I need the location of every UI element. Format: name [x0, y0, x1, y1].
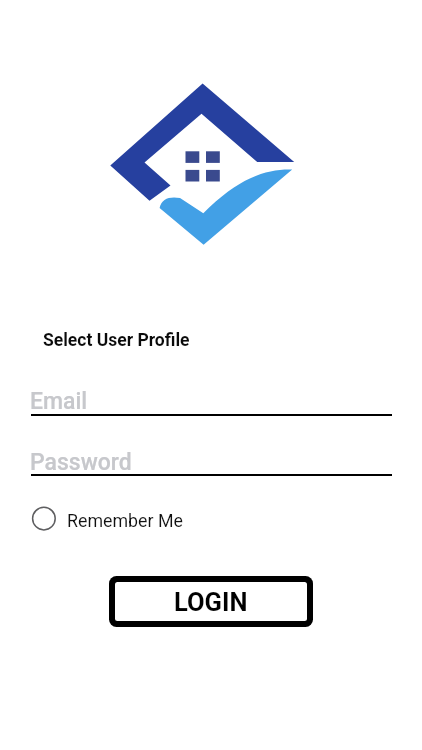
- staticText: Remember Me: [67, 510, 183, 531]
- staticText: LOGIN: [174, 587, 248, 617]
- staticText: Email: [30, 388, 88, 415]
- staticText: Password: [30, 449, 132, 476]
- button[interactable]: LOGIN: [115, 582, 307, 621]
- button[interactable]: Remember Me: [28, 504, 198, 536]
- other: App logo: [100, 70, 310, 260]
- staticText: Select User Profile: [43, 330, 190, 351]
